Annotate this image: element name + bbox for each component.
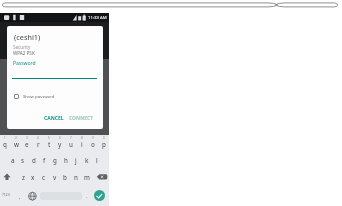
staticText: (ceshi1) (14, 32, 41, 42)
button[interactable]: CANCEL (41, 114, 67, 123)
staticText: g (53, 156, 57, 164)
staticText: , (19, 193, 21, 200)
staticText: n (74, 173, 78, 181)
staticText: WPA2 PSK (13, 50, 35, 56)
staticText: 3 (26, 136, 28, 140)
staticText: o (91, 140, 95, 148)
button[interactable] (94, 190, 105, 201)
staticText: f (43, 156, 46, 164)
staticText: m (84, 173, 90, 181)
staticText: i (81, 140, 83, 148)
staticText: 9 (92, 136, 94, 140)
button[interactable]: CONNECT (67, 114, 95, 123)
staticText: ?123 (2, 192, 10, 197)
button[interactable] (14, 94, 19, 99)
staticText: 4 (37, 136, 39, 140)
staticText: CONNECT (69, 115, 94, 122)
staticText: v (53, 173, 57, 181)
staticText: t (48, 140, 51, 148)
staticText: 2 (15, 136, 17, 140)
staticText: w (14, 140, 19, 148)
staticText: l (96, 156, 98, 164)
staticText: Security (13, 44, 31, 50)
staticText: CANCEL (44, 115, 64, 122)
staticText: q (3, 140, 7, 148)
staticText: 7 (70, 136, 72, 140)
staticText: Password (13, 60, 36, 67)
staticText: c (42, 173, 46, 181)
staticText: s (21, 156, 25, 164)
staticText: p (102, 140, 106, 148)
staticText: u (69, 140, 73, 148)
staticText: e (25, 140, 29, 148)
staticText: 8 (81, 136, 83, 140)
staticText: r (37, 140, 40, 148)
staticText: d (32, 156, 36, 164)
staticText: y (58, 140, 62, 148)
staticText: 5 (48, 136, 50, 140)
staticText: 6 (59, 136, 61, 140)
staticText: Show password (23, 93, 55, 99)
button[interactable]: (ceshi1) (7, 26, 103, 129)
staticText: a (11, 156, 15, 164)
staticText: h (64, 156, 68, 164)
staticText: x (31, 173, 35, 181)
staticText: 0 (103, 136, 105, 140)
staticText: . (86, 192, 88, 199)
staticText: 1 (4, 136, 6, 140)
staticText: k (85, 156, 89, 164)
staticText: z (22, 173, 25, 181)
staticText: j (75, 156, 77, 164)
staticText: b (63, 173, 67, 181)
staticText: 11:33 AM (88, 14, 107, 20)
